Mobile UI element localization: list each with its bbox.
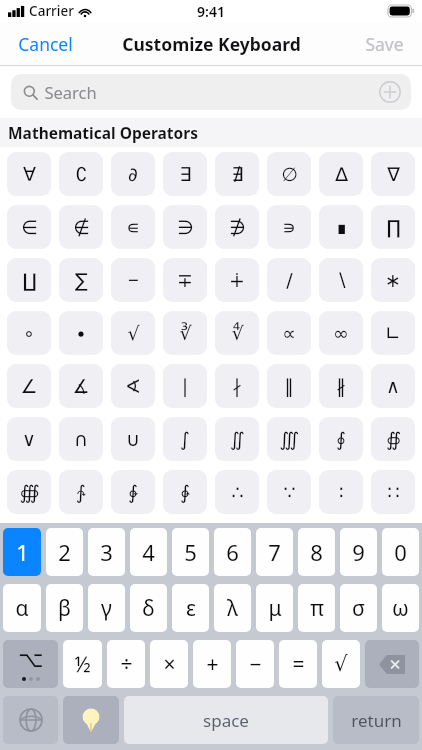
button[interactable]: ∊ bbox=[111, 205, 155, 249]
button[interactable]: Cancel bbox=[0, 24, 91, 64]
button[interactable]: 0 bbox=[382, 528, 419, 576]
button[interactable]: ∦ bbox=[319, 364, 363, 408]
button[interactable]: Save bbox=[347, 24, 422, 64]
button[interactable]: ∳ bbox=[163, 470, 207, 514]
button[interactable]: μ bbox=[256, 584, 293, 632]
button[interactable]: ∽ bbox=[267, 523, 311, 567]
button[interactable]: γ bbox=[88, 584, 125, 632]
button[interactable]: ∩ bbox=[59, 417, 103, 461]
button[interactable]: ∇ bbox=[371, 152, 415, 196]
button[interactable]: ∄ bbox=[215, 152, 259, 196]
button[interactable]: ∪ bbox=[111, 417, 155, 461]
button[interactable]: ∬ bbox=[215, 417, 259, 461]
button[interactable]: ∨ bbox=[7, 417, 51, 461]
button[interactable]: ∂ bbox=[111, 152, 155, 196]
button[interactable]: ∍ bbox=[267, 205, 311, 249]
button[interactable]: ½ bbox=[63, 640, 102, 688]
button[interactable]: Suggestions bbox=[63, 696, 119, 744]
button[interactable]: ∠ bbox=[7, 364, 51, 408]
button[interactable]: ∞ bbox=[319, 311, 363, 355]
button[interactable]: ÷ bbox=[107, 640, 145, 688]
button[interactable]: ∧ bbox=[371, 364, 415, 408]
button[interactable]: ∟ bbox=[371, 311, 415, 355]
button[interactable]: ∓ bbox=[163, 258, 207, 302]
button[interactable]: × bbox=[150, 640, 188, 688]
button[interactable]: ∾ bbox=[319, 523, 363, 567]
button[interactable]: 3 bbox=[88, 528, 125, 576]
button[interactable]: + bbox=[193, 640, 231, 688]
button[interactable]: space bbox=[124, 696, 328, 744]
button[interactable]: √ bbox=[322, 640, 360, 688]
button[interactable]: ∱ bbox=[59, 470, 103, 514]
button[interactable]: ∺ bbox=[111, 523, 155, 567]
button[interactable]: ∋ bbox=[163, 205, 207, 249]
button[interactable]: ∝ bbox=[267, 311, 311, 355]
button[interactable]: ∤ bbox=[215, 364, 259, 408]
button[interactable]: return bbox=[333, 696, 419, 744]
button[interactable]: ∁ bbox=[59, 152, 103, 196]
button[interactable]: 2 bbox=[46, 528, 83, 576]
button[interactable]: ∑ bbox=[59, 258, 103, 302]
button[interactable]: ∵ bbox=[267, 470, 311, 514]
button[interactable]: 5 bbox=[172, 528, 209, 576]
button[interactable]: Switch symbol page bbox=[3, 640, 58, 688]
button[interactable]: 4 bbox=[130, 528, 167, 576]
button[interactable]: σ bbox=[340, 584, 377, 632]
button[interactable]: ∃ bbox=[163, 152, 207, 196]
button[interactable]: ∉ bbox=[59, 205, 103, 249]
button[interactable]: 1 bbox=[3, 528, 41, 576]
button[interactable]: ∐ bbox=[7, 258, 51, 302]
button[interactable]: ∏ bbox=[371, 205, 415, 249]
button[interactable]: √ bbox=[111, 311, 155, 355]
button[interactable]: δ bbox=[130, 584, 167, 632]
button[interactable]: ∹ bbox=[59, 523, 103, 567]
button[interactable]: Backspace bbox=[365, 640, 419, 688]
button[interactable]: ∕ bbox=[267, 258, 311, 302]
button[interactable]: ∖ bbox=[319, 258, 363, 302]
button[interactable]: ∫ bbox=[163, 417, 207, 461]
button[interactable]: ∙ bbox=[59, 311, 103, 355]
button[interactable]: ∼ bbox=[215, 523, 259, 567]
button[interactable]: ∅ bbox=[267, 152, 311, 196]
button[interactable]: ω bbox=[382, 584, 419, 632]
button[interactable]: ∣ bbox=[163, 364, 207, 408]
button[interactable]: = bbox=[279, 640, 317, 688]
button[interactable]: ∔ bbox=[215, 258, 259, 302]
button[interactable]: ∶ bbox=[319, 470, 363, 514]
button[interactable]: λ bbox=[214, 584, 251, 632]
button[interactable]: ε bbox=[172, 584, 209, 632]
button[interactable]: ∢ bbox=[111, 364, 155, 408]
button[interactable]: ∎ bbox=[319, 205, 363, 249]
button[interactable]: ∯ bbox=[371, 417, 415, 461]
button[interactable]: ∈ bbox=[7, 205, 51, 249]
button[interactable]: Next keyboard bbox=[3, 696, 58, 744]
button[interactable]: ∲ bbox=[111, 470, 155, 514]
button[interactable]: 6 bbox=[214, 528, 251, 576]
button[interactable]: π bbox=[298, 584, 335, 632]
button[interactable]: ∴ bbox=[215, 470, 259, 514]
button[interactable]: ∸ bbox=[7, 523, 51, 567]
button[interactable]: ∘ bbox=[7, 311, 51, 355]
button[interactable]: ∰ bbox=[7, 470, 51, 514]
button[interactable]: α bbox=[3, 584, 41, 632]
button[interactable]: ∭ bbox=[267, 417, 311, 461]
button[interactable]: ∌ bbox=[215, 205, 259, 249]
button[interactable]: ∿ bbox=[371, 523, 415, 567]
button[interactable]: ∛ bbox=[163, 311, 207, 355]
button[interactable]: β bbox=[46, 584, 83, 632]
button[interactable]: − bbox=[236, 640, 274, 688]
button[interactable]: ∥ bbox=[267, 364, 311, 408]
button[interactable]: ∀ bbox=[7, 152, 51, 196]
button[interactable]: ∻ bbox=[163, 523, 207, 567]
button[interactable]: Search bbox=[11, 74, 411, 110]
button[interactable]: ∡ bbox=[59, 364, 103, 408]
button[interactable]: ∜ bbox=[215, 311, 259, 355]
button[interactable]: ∗ bbox=[371, 258, 415, 302]
button[interactable]: 9 bbox=[340, 528, 377, 576]
button[interactable]: 8 bbox=[298, 528, 335, 576]
button[interactable]: Add symbol bbox=[379, 81, 401, 103]
button[interactable]: ∆ bbox=[319, 152, 363, 196]
button[interactable]: − bbox=[111, 258, 155, 302]
button[interactable]: 7 bbox=[256, 528, 293, 576]
button[interactable]: ∮ bbox=[319, 417, 363, 461]
